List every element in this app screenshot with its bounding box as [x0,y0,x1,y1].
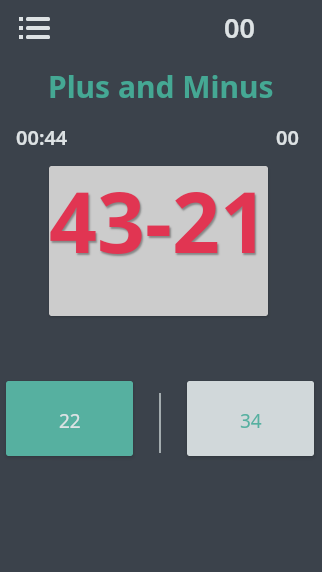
staticText: 43-21 [49,163,268,263]
staticText: 00 [224,9,255,46]
staticText: 00:44 [16,124,68,151]
button[interactable]: 22 [6,381,133,456]
staticText: 34 [240,408,262,434]
button[interactable]: 34 [187,381,314,456]
button[interactable]: Menu [19,17,50,39]
staticText: 22 [59,408,81,434]
staticText: Plus and Minus [48,66,274,107]
staticText: 00 [276,124,299,151]
